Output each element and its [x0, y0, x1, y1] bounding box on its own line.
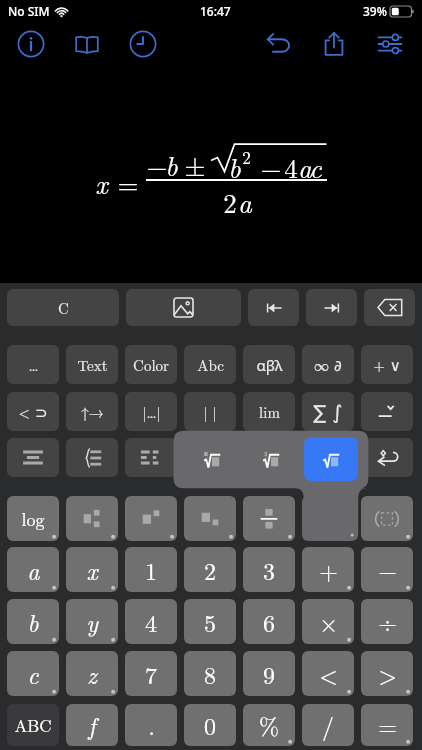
button[interactable] [302, 438, 354, 477]
button[interactable]: + ∨ [361, 345, 413, 384]
staticText: ↑→ [81, 401, 104, 422]
button[interactable]: 3 [243, 547, 295, 592]
button[interactable]: 8 [184, 651, 236, 696]
button[interactable]: y [66, 599, 118, 644]
staticText: f [88, 708, 96, 742]
button[interactable] [126, 289, 241, 326]
staticText: b [27, 605, 39, 639]
button[interactable] [306, 289, 357, 326]
staticText: αβλ [256, 355, 283, 375]
button[interactable]: 1 [125, 547, 177, 592]
button[interactable]: Color [125, 345, 177, 384]
button[interactable]: / [302, 704, 354, 746]
staticText: … [28, 354, 39, 375]
button[interactable]: < ⊃ [7, 392, 59, 431]
button[interactable] [125, 438, 177, 477]
button[interactable]: αβλ [243, 345, 295, 384]
staticText: = [378, 708, 397, 742]
button[interactable]: Cube root [244, 437, 298, 481]
button[interactable] [364, 289, 415, 326]
button[interactable]: c [7, 651, 59, 696]
button[interactable] [243, 438, 295, 477]
button[interactable]: 6 [243, 599, 295, 644]
staticText: 2 [223, 183, 237, 221]
button[interactable]: 5 [184, 599, 236, 644]
button[interactable]: … [7, 345, 59, 384]
staticText: a [27, 553, 40, 587]
staticText: 2 [204, 553, 216, 587]
button[interactable]: Abc [184, 345, 236, 384]
staticText: a [298, 148, 312, 186]
button[interactable]: ↑→ [66, 392, 118, 431]
button[interactable]: lim [243, 392, 295, 431]
staticText: Color [133, 354, 169, 375]
button[interactable] [302, 496, 354, 541]
button[interactable]: % [243, 704, 295, 746]
button[interactable]: f [66, 704, 118, 746]
staticText: ABC [14, 713, 52, 737]
staticText: . [148, 708, 155, 742]
button[interactable]: Library [65, 27, 109, 61]
button[interactable]: Share [312, 27, 356, 61]
button[interactable]: ABC [7, 704, 59, 746]
staticText: ∑ ∫ [313, 398, 343, 425]
button[interactable] [184, 438, 236, 477]
button[interactable] [248, 289, 299, 326]
button[interactable]: x [66, 547, 118, 592]
button[interactable]: Info [9, 27, 53, 61]
button[interactable]: History [121, 27, 165, 61]
button[interactable]: Square root [304, 437, 358, 481]
staticText: 4 [145, 605, 157, 639]
button[interactable]: z [66, 651, 118, 696]
button[interactable]: + [302, 547, 354, 592]
button[interactable]: b [7, 599, 59, 644]
button[interactable]: Nth root [185, 437, 239, 481]
button[interactable] [361, 496, 413, 541]
button[interactable]: 9 [243, 651, 295, 696]
button[interactable] [66, 438, 118, 477]
button[interactable]: C [7, 289, 119, 326]
button[interactable] [361, 438, 413, 477]
staticText: ÷ [378, 605, 397, 639]
staticText: + [319, 553, 338, 587]
staticText: Abc [197, 354, 224, 375]
staticText: × [319, 605, 338, 639]
staticText: z [87, 657, 97, 691]
staticText: % [259, 708, 279, 742]
button[interactable]: − [361, 547, 413, 592]
button[interactable]: 2 [184, 547, 236, 592]
staticText: y [86, 605, 98, 639]
button[interactable]: log [7, 496, 59, 541]
staticText: − [378, 553, 397, 587]
button[interactable]: | | [184, 392, 236, 431]
button[interactable]: Settings [368, 27, 412, 61]
button[interactable]: × [302, 599, 354, 644]
button[interactable] [361, 392, 413, 431]
button[interactable]: < [302, 651, 354, 696]
button[interactable]: > [361, 651, 413, 696]
button[interactable]: a [7, 547, 59, 592]
staticText: 7 [145, 657, 157, 691]
staticText: 16:47 [200, 3, 231, 19]
button[interactable]: ∑ ∫ [302, 392, 354, 431]
button[interactable] [7, 438, 59, 477]
staticText: − [146, 146, 168, 184]
button[interactable]: Text [66, 345, 118, 384]
staticText: ∞ ∂ [314, 354, 342, 375]
staticText: No SIM [8, 3, 50, 19]
button[interactable] [125, 496, 177, 541]
button[interactable]: 4 [125, 599, 177, 644]
button[interactable]: ÷ [361, 599, 413, 644]
button[interactable] [184, 496, 236, 541]
staticText: x [95, 164, 108, 202]
button[interactable]: = [361, 704, 413, 746]
button[interactable]: . [125, 704, 177, 746]
button[interactable]: |…| [125, 392, 177, 431]
button[interactable] [243, 496, 295, 541]
button[interactable]: 0 [184, 704, 236, 746]
staticText: 2 [242, 145, 251, 169]
button[interactable]: Undo [256, 27, 300, 61]
button[interactable]: ∞ ∂ [302, 345, 354, 384]
button[interactable]: 7 [125, 651, 177, 696]
button[interactable] [66, 496, 118, 541]
